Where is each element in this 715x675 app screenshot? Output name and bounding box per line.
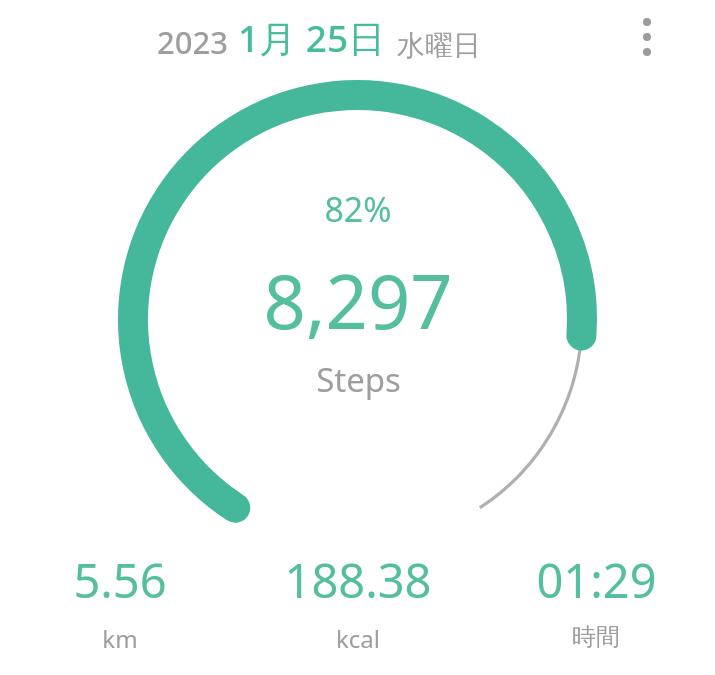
button[interactable]: 01:29	[477, 544, 715, 656]
button[interactable]: 188.38	[239, 544, 477, 659]
staticText: 8,297	[263, 250, 453, 351]
staticText: 2023	[157, 21, 228, 63]
staticText: 時間	[572, 622, 620, 652]
staticText: 1月 25日	[238, 12, 386, 63]
button[interactable]: 5.56	[0, 544, 239, 659]
staticText: 5.56	[73, 548, 167, 612]
button[interactable]: More options	[619, 9, 675, 65]
staticText: 水曜日	[397, 28, 481, 63]
staticText: Steps	[316, 357, 401, 402]
staticText: km	[102, 622, 138, 655]
button[interactable]: Steps progress 82 percent	[118, 80, 597, 540]
staticText: 01:29	[536, 548, 657, 612]
staticText: 188.38	[284, 548, 432, 612]
button[interactable]: 2023	[155, 8, 483, 67]
staticText: 82%	[324, 186, 392, 232]
staticText: kcal	[336, 622, 380, 655]
